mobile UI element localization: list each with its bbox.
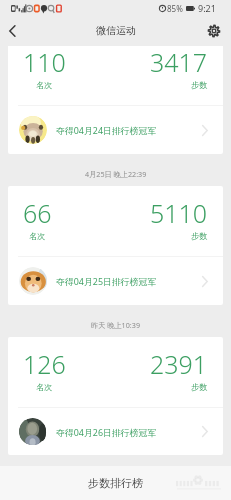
- staticText: 2391: [150, 347, 208, 381]
- staticText: 126: [23, 347, 66, 381]
- button[interactable]: Settings: [203, 16, 225, 46]
- staticText: 夺得04月26日排行榜冠军: [56, 426, 157, 438]
- staticText: 步数: [191, 382, 208, 392]
- button[interactable]: Back: [0, 16, 24, 46]
- button[interactable]: 夺得04月24日排行榜冠军: [8, 106, 223, 154]
- staticText: 夺得04月25日排行榜冠军: [56, 275, 157, 287]
- staticText: 名次: [29, 231, 46, 241]
- staticText: 3417: [150, 46, 208, 79]
- staticText: 9:21: [198, 2, 216, 14]
- staticText: 步数排行榜: [88, 476, 143, 490]
- staticText: 步数: [191, 80, 208, 90]
- staticText: 5110: [150, 196, 208, 230]
- staticText: 4月25日 晚上22:39: [85, 169, 147, 179]
- staticText: 夺得04月24日排行榜冠军: [56, 124, 157, 136]
- staticText: 66: [23, 196, 52, 230]
- staticText: 85%: [167, 3, 183, 14]
- staticText: 昨天 晚上10:39: [91, 320, 140, 330]
- staticText: 名次: [36, 382, 53, 392]
- button[interactable]: 夺得04月26日排行榜冠军: [8, 408, 223, 455]
- button[interactable]: 步数排行榜: [0, 466, 231, 500]
- staticText: 名次: [36, 80, 53, 90]
- staticText: 步数: [191, 231, 208, 241]
- staticText: 微信运动: [96, 24, 136, 37]
- button[interactable]: 夺得04月25日排行榜冠军: [8, 257, 223, 305]
- staticText: 110: [23, 46, 66, 79]
